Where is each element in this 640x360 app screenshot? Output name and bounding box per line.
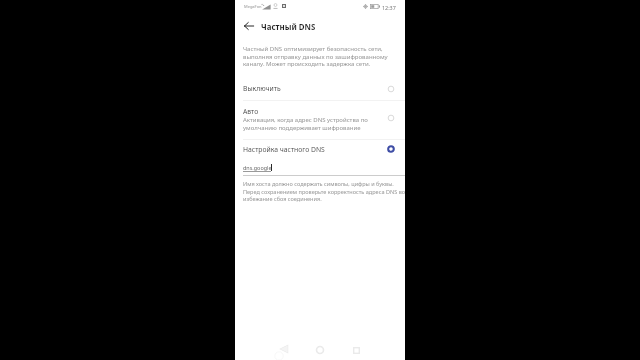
button[interactable]: dns.google bbox=[235, 160, 405, 176]
staticText: Частный DNS bbox=[261, 22, 316, 33]
staticText: Активация, когда адрес DNS устройства по… bbox=[243, 116, 373, 132]
staticText: Имя хоста должно содержать символы, цифр… bbox=[243, 180, 405, 203]
staticText: Настройка частного DNS bbox=[243, 145, 325, 154]
button[interactable]: Home bbox=[310, 340, 330, 360]
button[interactable]: Recent apps bbox=[346, 340, 366, 360]
button[interactable]: Авто bbox=[235, 100, 405, 138]
staticText: Частный DNS оптимизирует безопасность се… bbox=[243, 45, 393, 68]
button[interactable]: Back bbox=[274, 339, 294, 359]
staticText: MegaFon bbox=[244, 4, 262, 9]
button[interactable]: Выключить bbox=[235, 79, 405, 99]
staticText: 12:37 bbox=[382, 4, 396, 11]
staticText: Авто bbox=[243, 107, 259, 116]
button[interactable]: Настройка частного DNS bbox=[235, 140, 405, 159]
staticText: Выключить bbox=[243, 84, 281, 93]
button[interactable]: Back bbox=[240, 17, 258, 35]
staticText: dns.google bbox=[243, 164, 272, 171]
